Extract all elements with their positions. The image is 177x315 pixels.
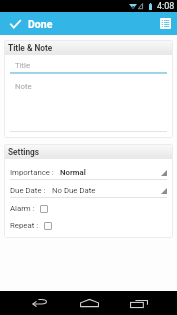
button[interactable]: Switch to list view — [154, 12, 177, 35]
staticText: No Due Date — [52, 186, 96, 195]
button[interactable]: Done — [0, 12, 63, 35]
button[interactable]: Recent apps — [121, 291, 157, 315]
button[interactable]: Importance : — [10, 168, 167, 180]
staticText: Importance : — [10, 168, 54, 177]
button[interactable]: Back — [22, 291, 58, 315]
button[interactable]: Alarm : — [10, 204, 167, 213]
staticText: Done — [28, 18, 53, 30]
staticText: Settings — [8, 147, 40, 157]
button[interactable]: Home — [71, 291, 107, 315]
staticText: Repeat : — [10, 221, 39, 230]
staticText: Alarm : — [10, 204, 35, 213]
button[interactable]: Repeat : — [10, 221, 167, 230]
staticText: Title — [15, 61, 31, 70]
staticText: Title & Note — [8, 43, 53, 53]
staticText: Note — [15, 82, 32, 91]
button[interactable]: Due Date : — [10, 186, 167, 198]
staticText: 4:08 — [157, 1, 175, 12]
staticText: Normal — [60, 168, 86, 177]
staticText: Due Date : — [10, 186, 46, 195]
